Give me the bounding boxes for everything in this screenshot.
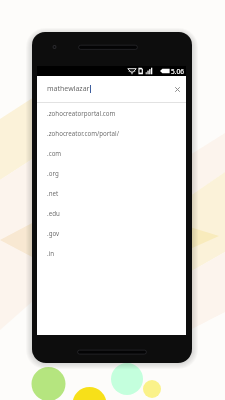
button[interactable]: .net [37,183,186,203]
staticText: .zohocreator.com/portal/ [47,129,119,137]
button[interactable]: .com [37,143,186,163]
button[interactable]: .gov [37,223,186,243]
staticText: .edu [47,209,60,217]
staticText: mathewlazar [47,84,90,94]
staticText: .com [47,149,62,157]
staticText: .org [47,169,59,177]
staticText: 5.06 [171,67,184,76]
staticText: .zohocreatorportal.com [47,109,116,117]
button[interactable]: .zohocreator.com/portal/ [37,123,186,143]
button[interactable]: .org [37,163,186,183]
staticText: .net [47,189,59,197]
button[interactable]: Clear search [172,84,183,95]
staticText: .in [47,249,55,257]
button[interactable]: .zohocreatorportal.com [37,103,186,123]
button[interactable]: .edu [37,203,186,223]
staticText: .gov [47,229,60,237]
button[interactable]: .in [37,243,186,263]
button[interactable]: mathewlazar [37,76,186,102]
